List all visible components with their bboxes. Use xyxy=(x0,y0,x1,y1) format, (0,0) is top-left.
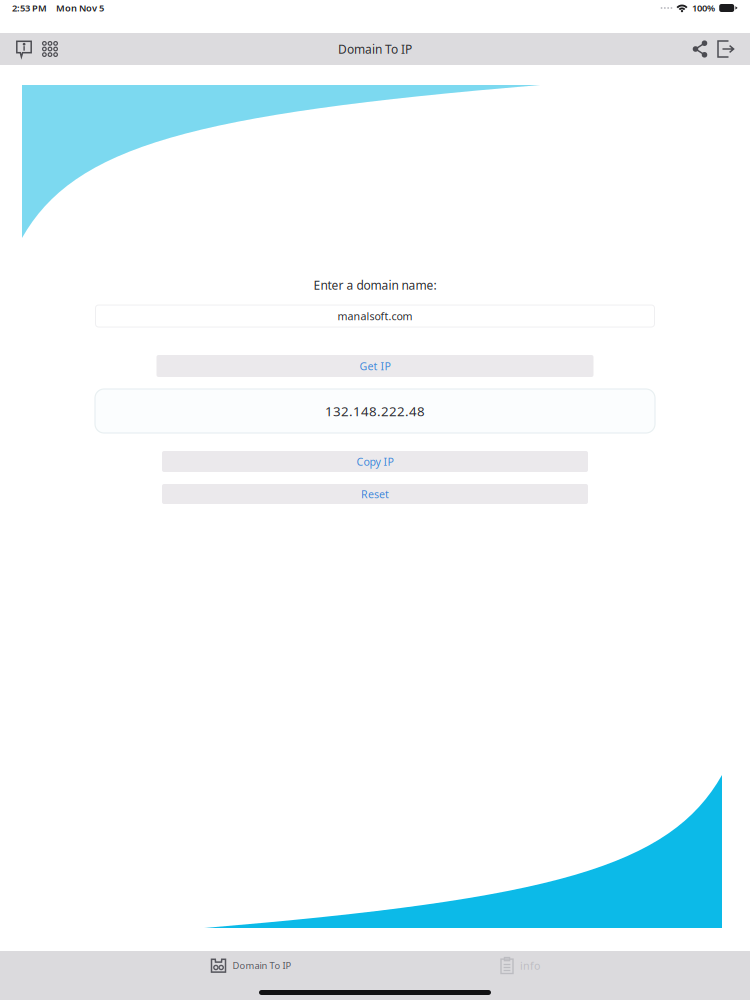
button[interactable]: Domain To IP xyxy=(161,950,341,980)
button[interactable]: info xyxy=(430,950,610,980)
staticText: Copy IP xyxy=(356,454,393,469)
button[interactable]: Copy IP xyxy=(162,451,588,472)
button[interactable]: Reset xyxy=(162,484,588,504)
staticText: info xyxy=(520,958,540,973)
button[interactable]: Get IP xyxy=(156,355,593,377)
staticText: 132.148.222.48 xyxy=(325,402,425,420)
staticText: Domain To IP xyxy=(338,41,412,57)
button[interactable]: Export xyxy=(713,33,739,65)
button[interactable]: Info xyxy=(11,33,37,65)
staticText: 2:53 PM xyxy=(12,2,47,14)
staticText: 100% xyxy=(692,2,715,14)
button[interactable]: Keypad xyxy=(37,33,63,65)
button[interactable]: Share xyxy=(687,33,713,65)
staticText: manalsoft.com xyxy=(337,309,412,323)
staticText: Reset xyxy=(361,487,389,501)
staticText: Get IP xyxy=(359,359,390,373)
staticText: Domain To IP xyxy=(232,959,291,972)
staticText: Mon Nov 5 xyxy=(56,2,104,14)
staticText: Enter a domain name: xyxy=(313,277,436,293)
